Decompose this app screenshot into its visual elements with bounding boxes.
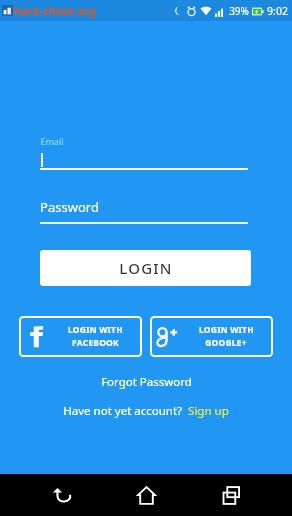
staticText: 9:02 bbox=[267, 4, 288, 18]
button[interactable]: Recent apps bbox=[208, 474, 254, 516]
staticText: Password bbox=[40, 198, 99, 216]
staticText: Forgot Password bbox=[101, 374, 192, 390]
button[interactable]: Have not yet account? Sign up bbox=[0, 403, 292, 419]
staticText: hack-cheat.org bbox=[13, 3, 96, 18]
staticText: LOGIN bbox=[119, 258, 173, 278]
staticText: LOGIN WITH bbox=[199, 324, 254, 336]
button[interactable]: LOGIN WITH bbox=[150, 316, 273, 357]
staticText: GOOGLE+ bbox=[205, 337, 247, 349]
button[interactable]: Password bbox=[40, 198, 248, 224]
staticText: LOGIN WITH bbox=[68, 324, 123, 336]
button[interactable]: Forgot Password bbox=[0, 374, 292, 390]
button[interactable]: LOGIN bbox=[40, 250, 251, 286]
staticText: Email bbox=[40, 135, 64, 147]
staticText: FACEBOOK bbox=[72, 337, 119, 349]
button[interactable]: LOGIN WITH bbox=[19, 316, 142, 357]
button[interactable]: Back bbox=[39, 474, 85, 516]
staticText: 39% bbox=[229, 4, 249, 18]
staticText: Have not yet account? Sign up bbox=[63, 403, 229, 419]
button[interactable]: Home bbox=[123, 474, 169, 516]
button[interactable]: Email bbox=[40, 135, 248, 170]
